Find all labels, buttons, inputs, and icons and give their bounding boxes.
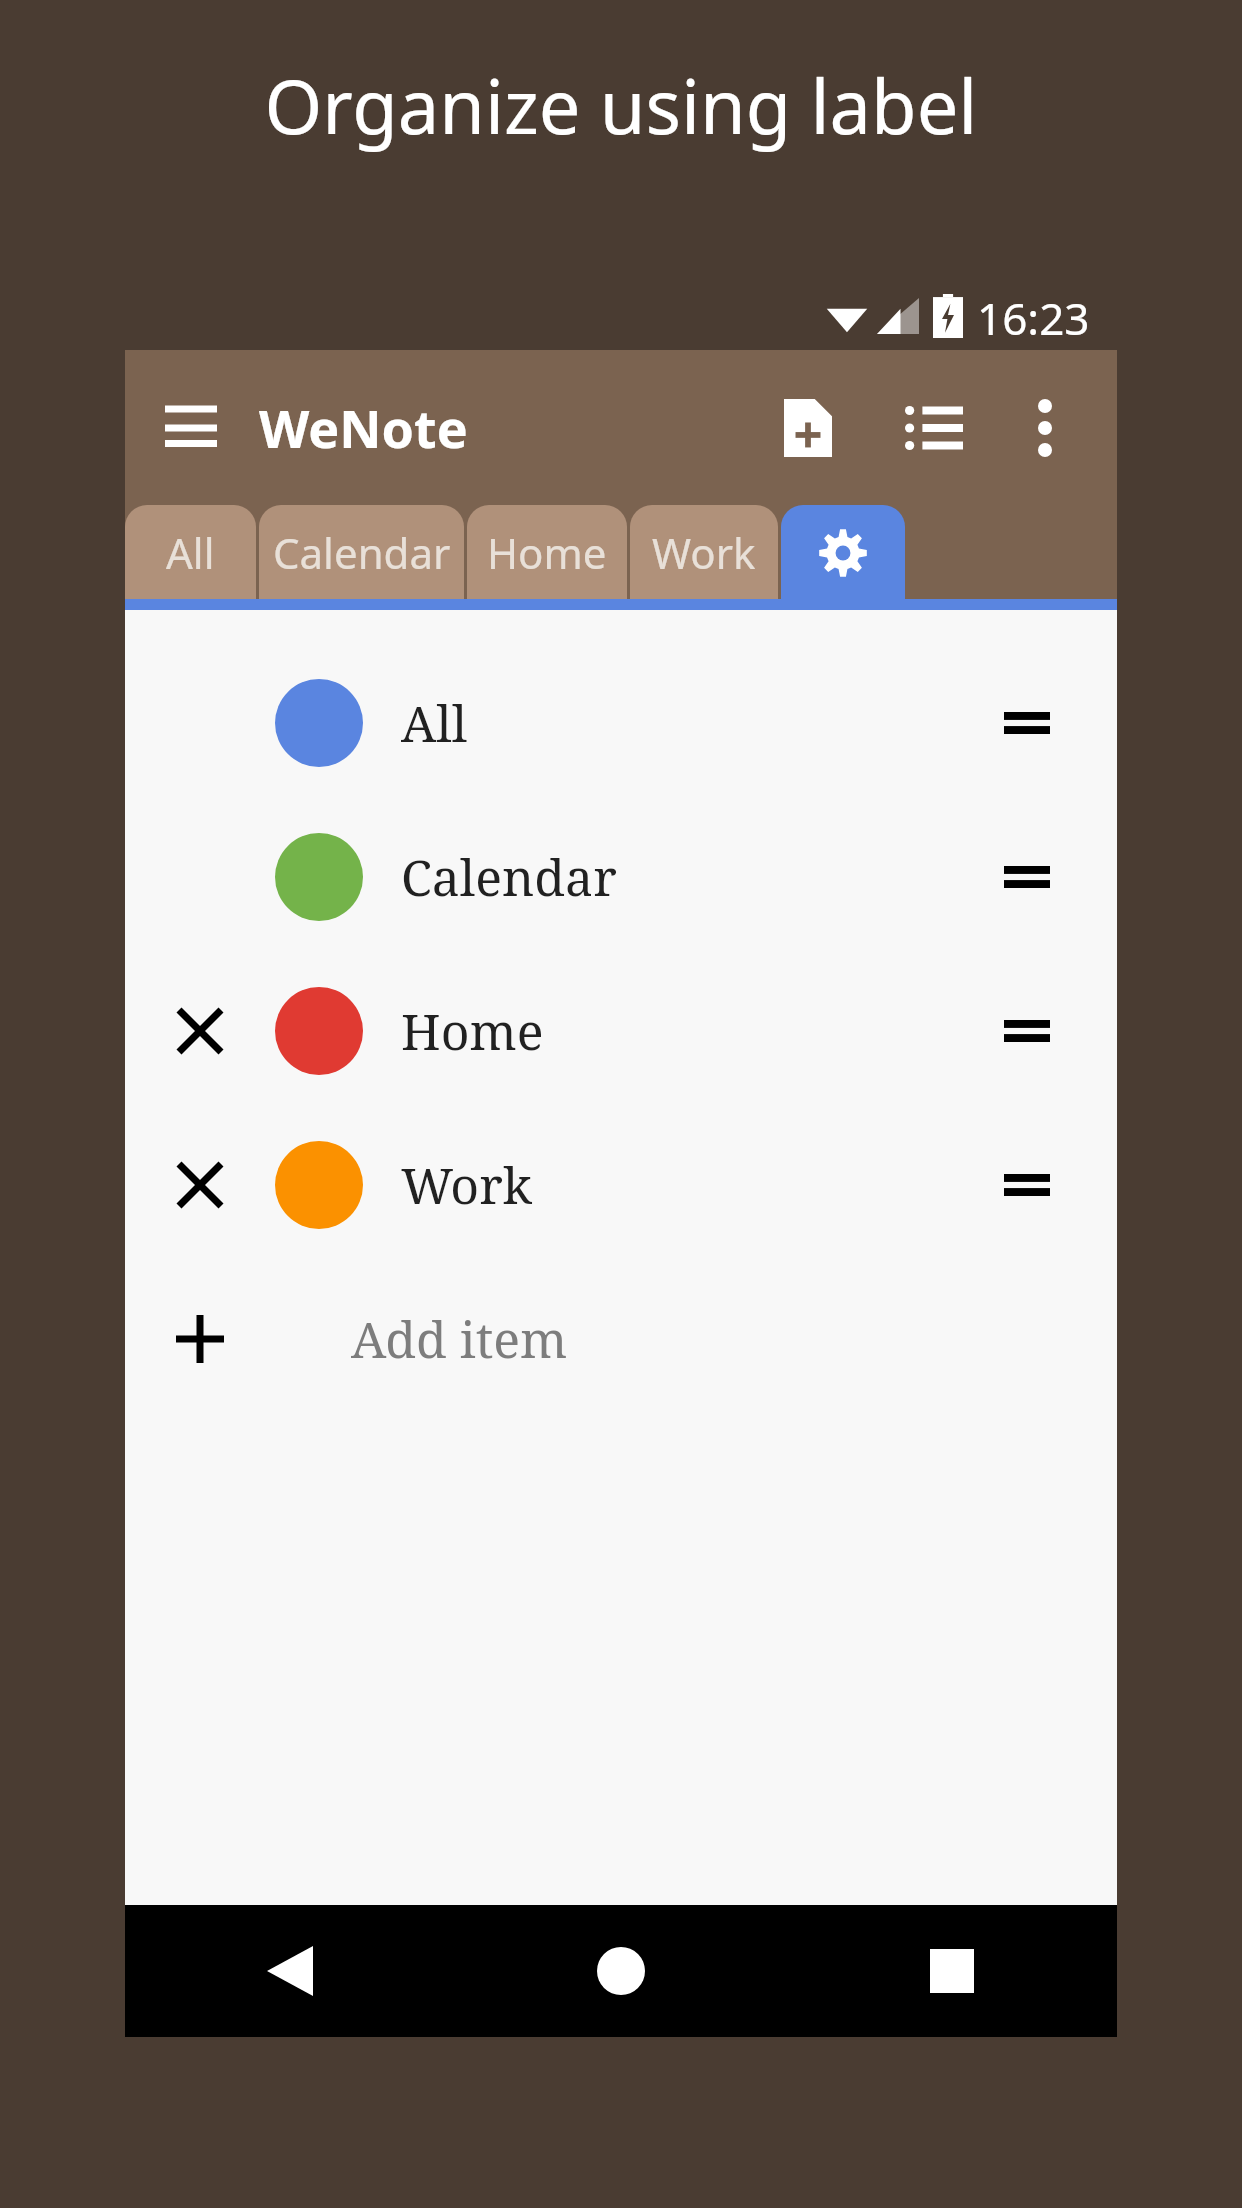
button[interactable]: Delete Work [125, 1108, 1117, 1262]
staticText: Add item [351, 1305, 568, 1373]
button[interactable]: All [125, 646, 1117, 800]
staticText: Work [401, 1151, 532, 1219]
button[interactable]: Delete Home [125, 954, 1117, 1108]
button[interactable]: Delete Work [155, 1140, 245, 1230]
button[interactable]: Reorder Calendar [967, 817, 1087, 937]
button[interactable]: Recent apps [786, 1905, 1117, 2037]
button[interactable]: Reorder Home [967, 971, 1087, 1091]
staticText: Home [487, 524, 607, 581]
button[interactable]: Settings [781, 505, 905, 600]
staticText: All [401, 689, 468, 757]
button[interactable]: Calendar [125, 800, 1117, 954]
button[interactable]: Reorder Work [967, 1125, 1087, 1245]
button[interactable]: Reorder All [967, 663, 1087, 783]
button[interactable]: New note [753, 373, 863, 483]
staticText: Organize using label [0, 55, 1242, 156]
staticText: All [166, 524, 215, 581]
button[interactable]: Back [125, 1905, 455, 2037]
staticText: Home [401, 997, 544, 1065]
button[interactable]: Delete Home [155, 986, 245, 1076]
button[interactable]: All [125, 505, 256, 600]
button[interactable]: Home [455, 1905, 786, 2037]
staticText: Work [652, 524, 756, 581]
button[interactable]: Open navigation drawer [143, 380, 239, 476]
button[interactable]: Work [630, 505, 778, 600]
button[interactable]: More options [995, 378, 1095, 478]
staticText: Calendar [273, 524, 451, 581]
button[interactable]: Calendar [259, 505, 464, 600]
staticText: Calendar [401, 843, 617, 911]
button[interactable]: Home [467, 505, 627, 600]
staticText: 16:23 [977, 288, 1090, 344]
button[interactable]: Add item [125, 1262, 1117, 1416]
button[interactable]: List view [879, 373, 989, 483]
staticText: WeNote [259, 392, 468, 463]
